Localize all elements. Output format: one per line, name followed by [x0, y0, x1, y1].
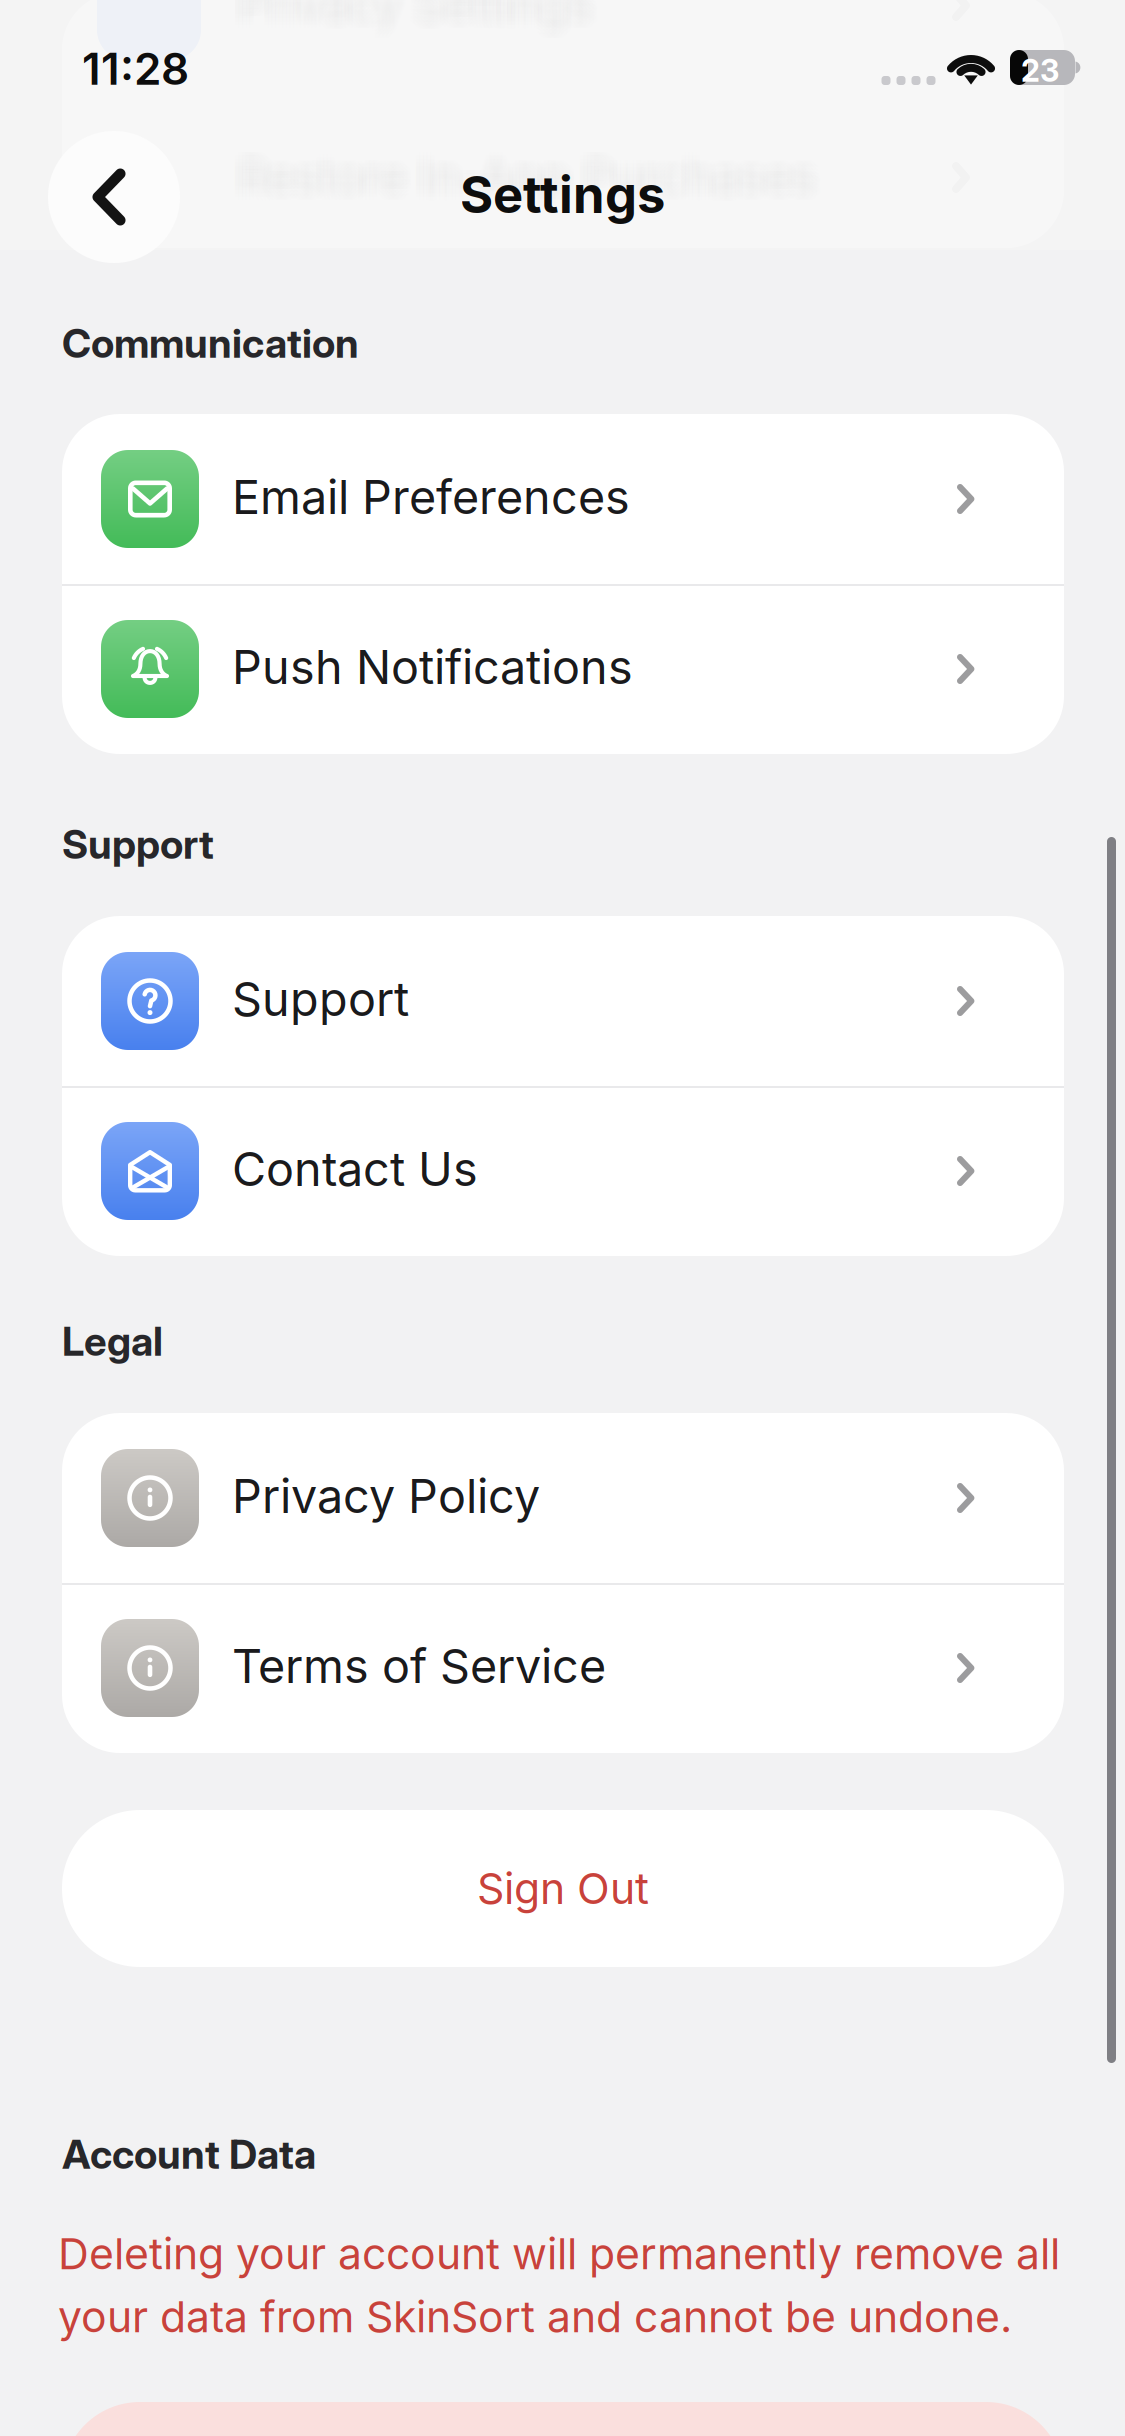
button[interactable]: Sign Out	[62, 1810, 1064, 1967]
staticText: Legal	[62, 1317, 163, 1365]
staticText: Support	[62, 820, 214, 868]
staticText: Restore In-App Purchases	[234, 152, 812, 208]
staticText: Settings	[460, 164, 665, 225]
button[interactable]: Contact Us	[62, 1086, 1064, 1256]
button[interactable]: Back	[48, 131, 180, 263]
staticText: Support	[232, 971, 409, 1027]
staticText: Restore In-App Purchases	[231, 152, 809, 208]
staticText: Restore In-App Purchases	[234, 155, 812, 212]
staticText: 23	[1021, 52, 1059, 89]
staticText: Account Data	[62, 2130, 316, 2178]
staticText: Terms of Service	[232, 1638, 606, 1694]
staticText: Restore In-App Purchases	[245, 155, 823, 212]
staticText: Restore In-App Purchases	[234, 141, 812, 197]
staticText: Restore In-App Purchases	[231, 144, 809, 201]
staticText: Restore In-App Purchases	[242, 144, 820, 201]
staticText: Restore In-App Purchases	[238, 141, 816, 197]
staticText: Contact Us	[232, 1141, 478, 1197]
staticText: Push Notifications	[232, 639, 633, 695]
button[interactable]: Terms of Service	[62, 1583, 1064, 1753]
staticText: Restore In-App Purchases	[231, 148, 809, 204]
staticText: Restore In-App Purchases	[242, 148, 820, 204]
staticText: Sign Out	[477, 1863, 649, 1914]
staticText: Restore In-App Purchases	[238, 144, 816, 201]
staticText: Restore In-App Purchases	[245, 144, 823, 201]
staticText: Communication	[62, 319, 359, 367]
staticText: Restore In-App Purchases	[245, 148, 823, 204]
staticText: Restore In-App Purchases	[238, 155, 816, 212]
staticText: Restore In-App Purchases	[242, 155, 820, 212]
staticText: Restore In-App Purchases	[231, 141, 809, 197]
staticText: Restore In-App Purchases	[234, 144, 812, 201]
button[interactable]: Push Notifications	[62, 584, 1064, 754]
staticText: Restore In-App Purchases	[242, 141, 820, 197]
staticText: Restore In-App Purchases	[238, 148, 816, 204]
staticText: Deleting your account will permanently r…	[58, 2228, 1060, 2280]
button[interactable]: Support	[62, 916, 1064, 1086]
staticText: Restore In-App Purchases	[231, 155, 809, 212]
staticText: Restore In-App Purchases	[242, 152, 820, 208]
staticText: Restore In-App Purchases	[234, 148, 812, 204]
staticText: Restore In-App Purchases	[245, 152, 823, 208]
staticText: Restore In-App Purchases	[238, 152, 816, 208]
staticText: Email Preferences	[232, 469, 630, 525]
staticText: 11:28	[82, 42, 189, 95]
staticText: Restore In-App Purchases	[245, 141, 823, 197]
button[interactable]: Email Preferences	[62, 414, 1064, 584]
button[interactable]: Privacy Policy	[62, 1413, 1064, 1583]
staticText: your data from SkinSort and cannot be un…	[58, 2291, 1012, 2343]
staticText: Privacy Policy	[232, 1468, 540, 1524]
